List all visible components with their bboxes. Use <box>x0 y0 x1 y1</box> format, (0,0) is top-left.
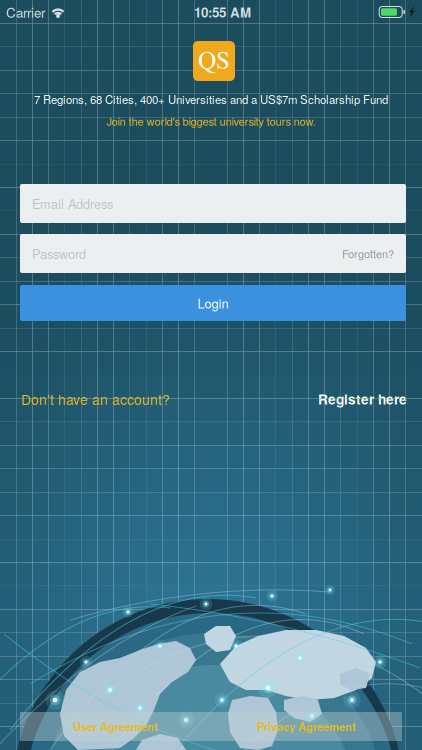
staticText: Don't have an account? <box>21 389 170 409</box>
staticText: Register here <box>318 389 407 409</box>
staticText: QS <box>198 42 230 76</box>
staticText: Carrier <box>6 2 45 22</box>
staticText: Login <box>197 294 228 312</box>
staticText: Forgotten? <box>342 246 394 261</box>
staticText: 10:55 AM <box>194 2 251 22</box>
staticText: User Agreement <box>73 718 158 734</box>
staticText: Password <box>32 244 86 262</box>
button[interactable]: Register here <box>318 389 407 409</box>
button[interactable]: Login <box>20 285 406 321</box>
staticText: Join the world's biggest university tour… <box>106 113 315 129</box>
staticText: Privacy Agreement <box>257 718 356 734</box>
button[interactable]: Forgotten? <box>342 246 394 261</box>
staticText: Email Address <box>32 194 113 212</box>
staticText: 7 Regions, 68 Cities, 400+ Universities … <box>34 91 388 107</box>
button[interactable]: Privacy Agreement <box>211 712 402 741</box>
button[interactable]: Don't have an account? <box>21 389 170 409</box>
button[interactable]: User Agreement <box>20 712 211 741</box>
